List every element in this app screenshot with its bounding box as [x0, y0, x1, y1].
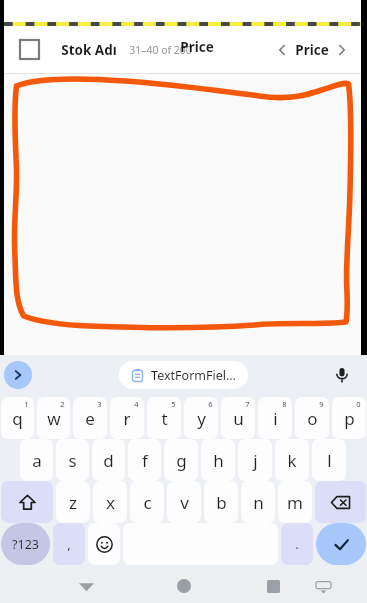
- staticText: Price: [180, 38, 214, 56]
- staticText: 2: [60, 399, 65, 409]
- button[interactable]: a: [20, 439, 53, 481]
- button[interactable]: l: [312, 439, 346, 481]
- button[interactable]: Previous page: [269, 37, 295, 63]
- button[interactable]: Enter: [316, 523, 366, 565]
- staticText: x: [106, 491, 115, 514]
- staticText: r: [123, 407, 131, 430]
- button[interactable]: q: [1, 397, 34, 439]
- staticText: y: [197, 407, 206, 430]
- button[interactable]: o: [295, 397, 329, 439]
- staticText: Price: [295, 41, 329, 59]
- staticText: TextFormFiel…: [151, 367, 236, 384]
- button[interactable]: b: [204, 481, 238, 523]
- staticText: d: [103, 449, 114, 472]
- staticText: e: [85, 407, 95, 430]
- staticText: c: [143, 491, 152, 514]
- button[interactable]: n: [241, 481, 275, 523]
- staticText: z: [69, 491, 77, 514]
- button[interactable]: m: [278, 481, 312, 523]
- staticText: Stok Adı: [61, 41, 117, 59]
- button[interactable]: e: [73, 397, 107, 439]
- button[interactable]: u: [221, 397, 255, 439]
- button[interactable]: Emoji: [88, 523, 120, 565]
- button[interactable]: i: [258, 397, 292, 439]
- staticText: n: [253, 491, 264, 514]
- staticText: 9: [319, 399, 324, 409]
- staticText: a: [32, 449, 42, 472]
- button[interactable]: t: [147, 397, 181, 439]
- button[interactable]: TextFormFiel…: [119, 361, 248, 389]
- staticText: 7: [245, 399, 250, 409]
- button[interactable]: Recents: [255, 569, 291, 603]
- button[interactable]: ,: [53, 523, 85, 565]
- staticText: ,: [67, 535, 71, 553]
- button[interactable]: p: [332, 397, 366, 439]
- staticText: i: [273, 407, 278, 430]
- staticText: 4: [134, 399, 139, 409]
- staticText: 3: [97, 399, 102, 409]
- staticText: b: [216, 491, 227, 514]
- button[interactable]: k: [275, 439, 309, 481]
- button[interactable]: r: [110, 397, 144, 439]
- staticText: j: [253, 449, 258, 472]
- button[interactable]: Voice input: [329, 362, 355, 388]
- button[interactable]: Back: [68, 569, 104, 603]
- staticText: h: [213, 449, 224, 472]
- staticText: .: [295, 535, 299, 553]
- staticText: k: [287, 449, 297, 472]
- staticText: 1: [24, 399, 29, 409]
- staticText: p: [344, 407, 355, 430]
- button[interactable]: h: [201, 439, 235, 481]
- staticText: t: [161, 407, 168, 430]
- staticText: m: [287, 491, 303, 514]
- staticText: 5: [171, 399, 176, 409]
- staticText: s: [68, 449, 77, 472]
- button[interactable]: z: [56, 481, 90, 523]
- button[interactable]: ?123: [1, 523, 50, 565]
- button[interactable]: Expand toolbar: [4, 361, 32, 389]
- staticText: 8: [282, 399, 287, 409]
- button[interactable]: Hide keyboard: [307, 569, 339, 603]
- button[interactable]: Home: [164, 569, 204, 603]
- button[interactable]: .: [281, 523, 313, 565]
- button[interactable]: Shift: [1, 481, 53, 523]
- button[interactable]: w: [37, 397, 70, 439]
- staticText: ?123: [12, 536, 39, 553]
- staticText: u: [233, 407, 244, 430]
- staticText: 0: [356, 399, 361, 409]
- button[interactable]: d: [92, 439, 125, 481]
- button[interactable]: y: [184, 397, 218, 439]
- staticText: 6: [208, 399, 213, 409]
- staticText: v: [180, 491, 189, 514]
- staticText: f: [142, 449, 148, 472]
- button[interactable]: f: [128, 439, 161, 481]
- staticText: q: [12, 407, 23, 430]
- staticText: 31–40 of 200: [129, 43, 192, 57]
- button[interactable]: c: [130, 481, 164, 523]
- staticText: g: [176, 449, 187, 472]
- staticText: w: [47, 407, 61, 430]
- button[interactable]: Backspace: [315, 481, 366, 523]
- button[interactable]: s: [56, 439, 89, 481]
- button[interactable]: Next page: [329, 37, 355, 63]
- button[interactable]: g: [164, 439, 198, 481]
- button[interactable]: x: [93, 481, 127, 523]
- button[interactable]: Select all: [20, 40, 39, 59]
- staticText: l: [327, 449, 332, 472]
- button[interactable]: j: [238, 439, 272, 481]
- staticText: o: [307, 407, 318, 430]
- button[interactable]: v: [167, 481, 201, 523]
